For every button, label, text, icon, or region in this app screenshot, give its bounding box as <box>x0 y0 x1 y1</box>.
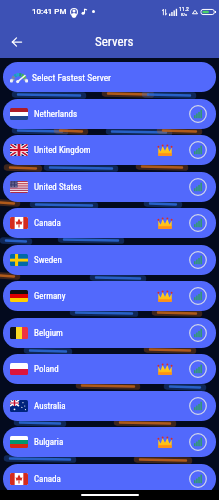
button[interactable]: Belgium <box>3 318 216 348</box>
staticText: K/s <box>181 12 188 17</box>
button[interactable]: Select Fastest Server <box>3 62 216 92</box>
staticText: Netherlands <box>34 109 78 120</box>
staticText: Canada <box>34 474 61 485</box>
button[interactable]: Australia <box>3 391 216 421</box>
staticText: Sweden <box>34 255 62 266</box>
staticText: 11.2 <box>179 6 189 12</box>
button[interactable]: Canada <box>3 208 216 238</box>
staticText: Bulgaria <box>34 437 64 448</box>
button[interactable]: United Kingdom <box>3 135 216 165</box>
staticText: Servers <box>95 34 134 49</box>
button[interactable]: Bulgaria <box>3 427 216 457</box>
button[interactable]: Netherlands <box>3 99 216 129</box>
button[interactable]: Germany <box>3 281 216 311</box>
staticText: Select Fastest Server <box>32 72 111 83</box>
staticText: Poland <box>34 364 59 375</box>
button[interactable]: United States <box>3 172 216 202</box>
staticText: 10:41 PM <box>32 7 67 16</box>
staticText: United Kingdom <box>34 145 91 156</box>
staticText: Belgium <box>34 328 63 339</box>
staticText: Australia <box>34 401 66 412</box>
staticText: Canada <box>34 218 61 229</box>
staticText: United States <box>34 182 82 193</box>
button[interactable]: Canada <box>3 464 216 494</box>
staticText: Germany <box>34 291 66 302</box>
button[interactable]: Back <box>4 29 30 55</box>
button[interactable]: Sweden <box>3 245 216 275</box>
button[interactable]: Poland <box>3 354 216 384</box>
